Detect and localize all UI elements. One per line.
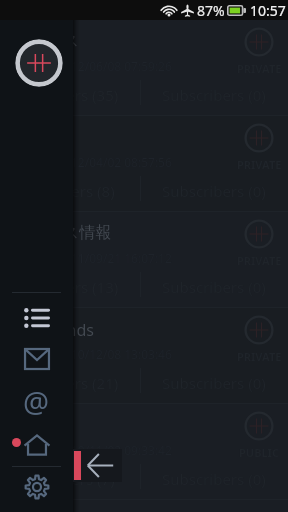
- button[interactable]: Lists: [9, 299, 64, 337]
- button[interactable]: Home: [9, 426, 64, 464]
- button[interactable]: テスト: [0, 116, 288, 212]
- staticText: 10/11/02 09:33:42: [71, 442, 172, 458]
- staticText: Members (8): [26, 181, 115, 201]
- staticText: サービス情報: [14, 223, 112, 243]
- staticText: 87%: [197, 1, 225, 20]
- staticText: @: [23, 382, 50, 420]
- button[interactable]: 開発: [0, 404, 288, 500]
- button[interactable]: サービス情報: [0, 212, 288, 308]
- staticText: 開発: [14, 415, 46, 435]
- button[interactable]: Back: [73, 449, 122, 482]
- staticText: 12/04/02 08:57:56: [71, 154, 172, 170]
- staticText: 10/12/08 13:03:46: [71, 346, 172, 362]
- button[interactable]: Settings: [9, 468, 64, 506]
- staticText: 10:57: [250, 1, 286, 20]
- staticText: my friends: [14, 319, 94, 341]
- staticText: ニュース: [14, 31, 80, 51]
- button[interactable]: Mail: [9, 340, 64, 378]
- staticText: Members (7): [26, 469, 115, 489]
- staticText: Members (35): [21, 85, 119, 105]
- staticText: 12/06/08 07:59:26: [71, 58, 172, 74]
- staticText: 11/09/21 16:07:12: [71, 250, 172, 266]
- button[interactable]: ニュース: [0, 20, 288, 116]
- button[interactable]: Mentions: [9, 382, 64, 420]
- button[interactable]: Account: [15, 39, 63, 87]
- staticText: Members (13): [21, 277, 119, 297]
- staticText: Members (21): [21, 373, 119, 393]
- button[interactable]: my friends: [0, 308, 288, 404]
